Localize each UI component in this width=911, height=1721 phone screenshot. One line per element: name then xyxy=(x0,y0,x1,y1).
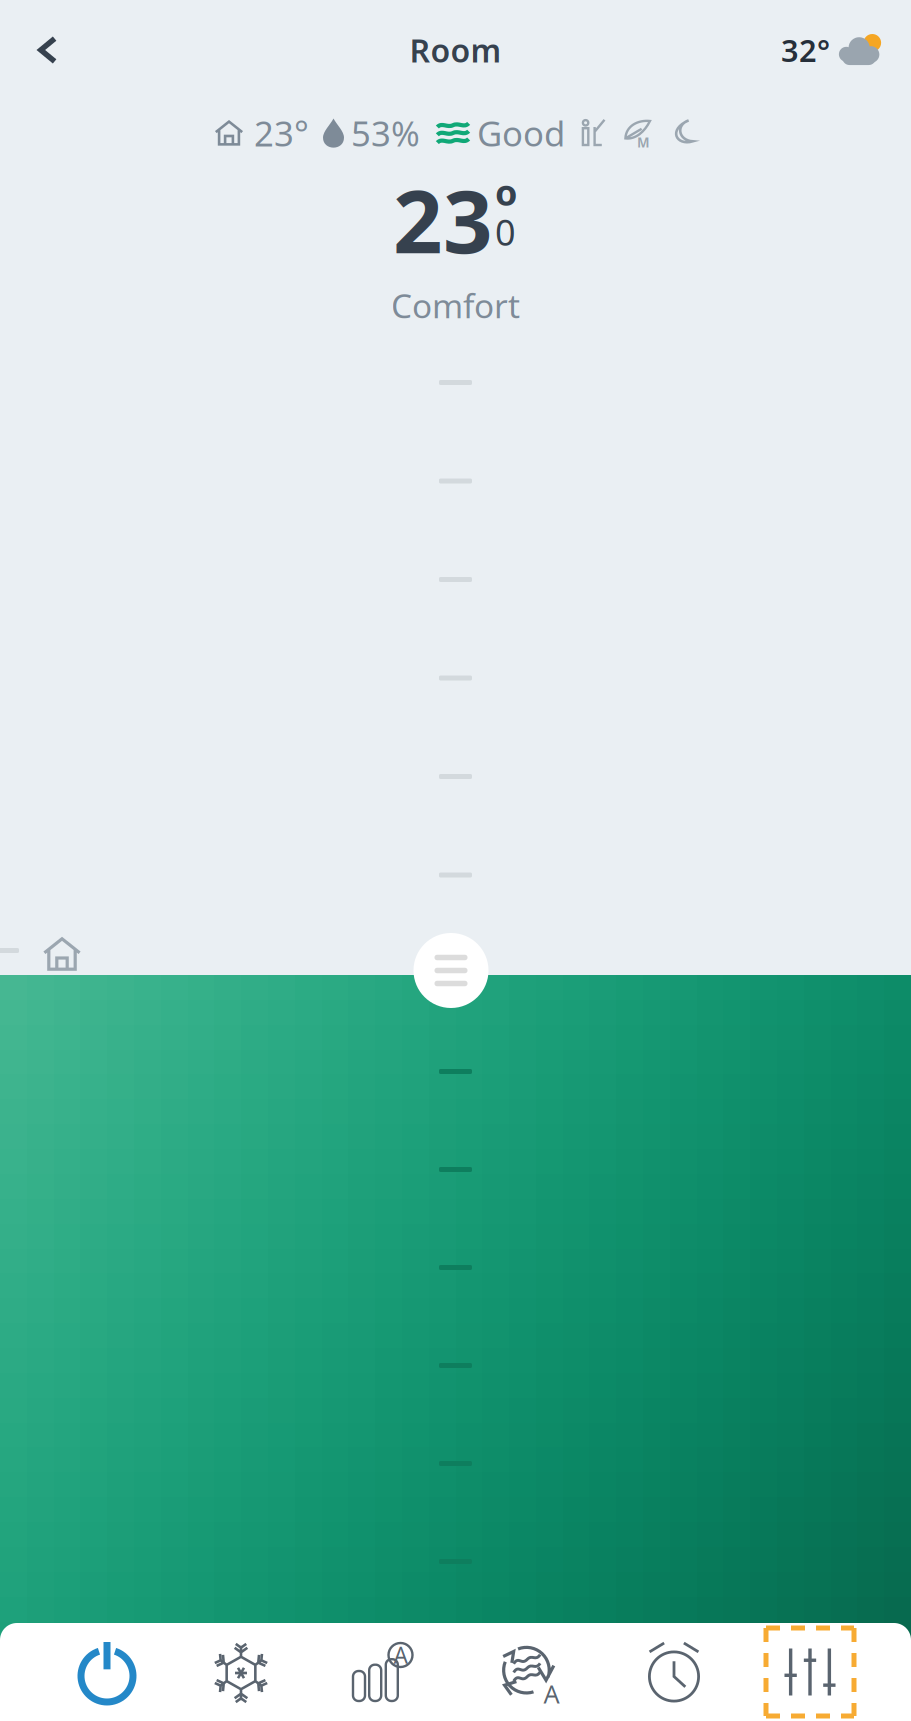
button[interactable]: Outdoor weather 32 degrees xyxy=(781,8,911,92)
button[interactable]: Cool mode xyxy=(181,1624,301,1721)
button[interactable]: Power xyxy=(47,1623,167,1721)
button[interactable]: Adjust temperature xyxy=(413,933,488,1008)
staticText: M xyxy=(637,133,650,151)
staticText: 32° xyxy=(781,30,830,70)
staticText: Room xyxy=(409,29,501,71)
button[interactable]: Timer xyxy=(614,1623,734,1721)
staticText: o xyxy=(495,168,518,216)
staticText: A xyxy=(393,1640,407,1670)
staticText: 23 xyxy=(393,162,493,277)
staticText: 23° xyxy=(254,110,309,156)
button[interactable]: Auto airflow xyxy=(471,1623,591,1721)
button[interactable]: Fan speed auto xyxy=(323,1623,443,1721)
button[interactable]: Settings xyxy=(750,1623,870,1721)
staticText: 53% xyxy=(351,110,420,156)
staticText: A xyxy=(543,1677,559,1710)
staticText: Comfort xyxy=(391,283,520,327)
button[interactable]: Back xyxy=(0,8,96,92)
staticText: Good xyxy=(477,110,565,156)
staticText: 0 xyxy=(495,208,516,256)
